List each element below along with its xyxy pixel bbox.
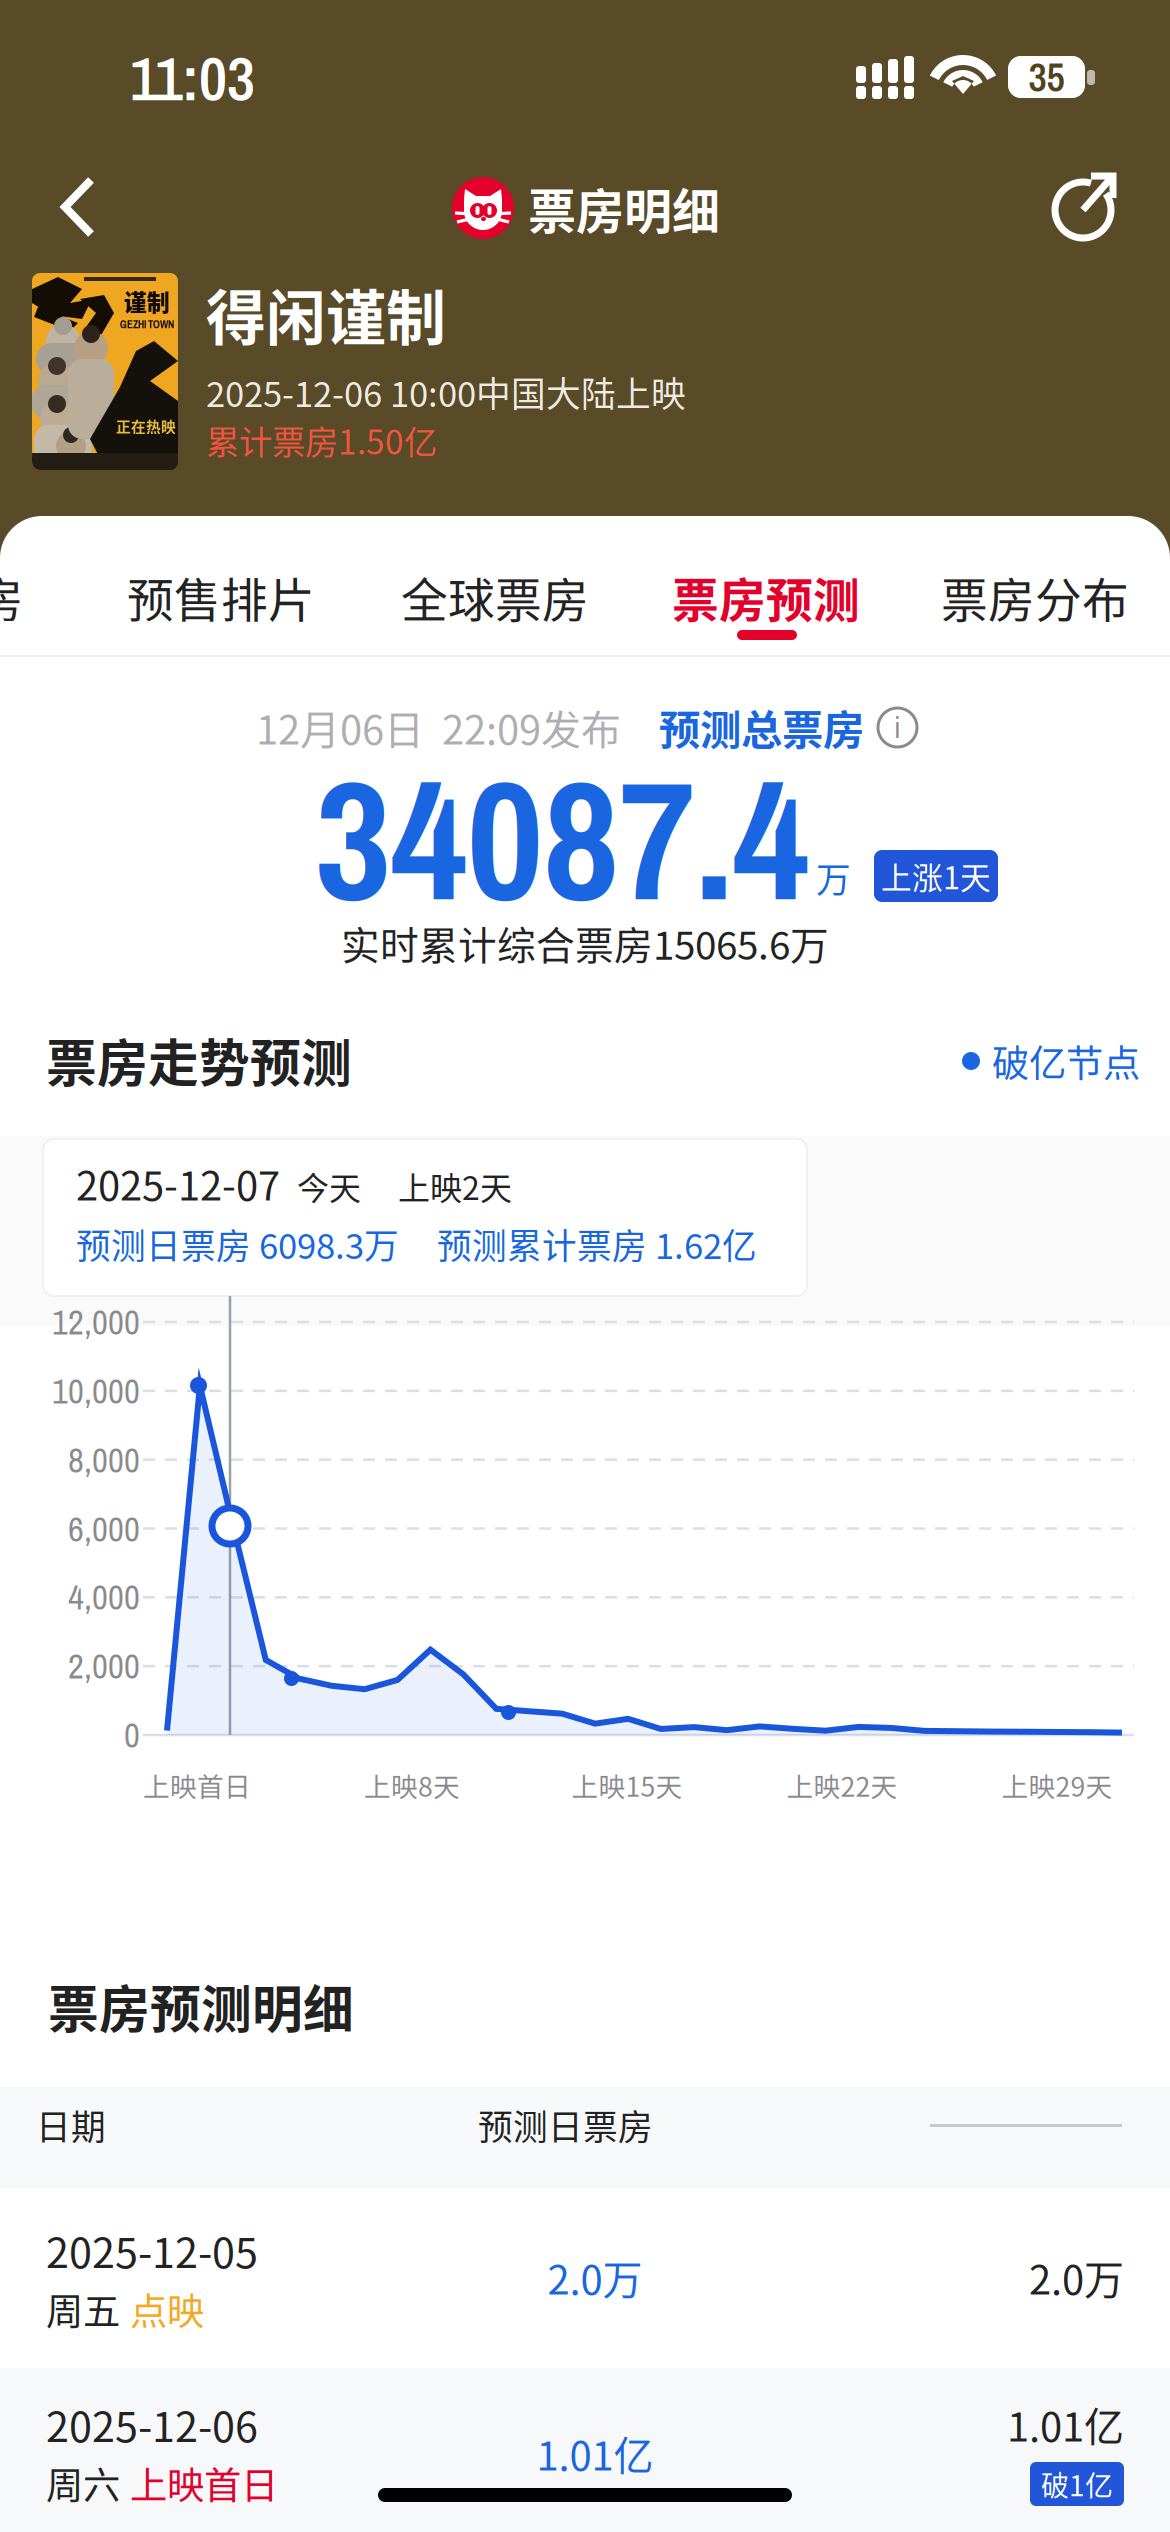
staticText: 万 — [816, 853, 851, 903]
staticText: 1.01亿 — [536, 2424, 653, 2482]
staticText: 破1亿 — [1041, 2464, 1113, 2504]
staticText: 实时累计综合票房15065.6万 — [341, 915, 829, 971]
staticText: 预售排片 — [127, 563, 315, 631]
staticText: 2.0万 — [1029, 2248, 1124, 2306]
button[interactable]: 房 — [0, 545, 90, 650]
staticText: 票房预测 — [672, 563, 860, 631]
staticText: 上映2天 — [398, 1163, 512, 1209]
staticText: 8,000 — [68, 1437, 140, 1483]
staticText: 2,000 — [68, 1643, 140, 1689]
staticText: 上映首日 — [130, 2456, 278, 2510]
staticText: 票房预测明细 — [48, 1969, 354, 2043]
staticText: 35 — [1028, 50, 1064, 104]
staticText: 6,000 — [68, 1506, 140, 1552]
staticText: 票房走势预测 — [46, 1023, 352, 1097]
staticText: 累计票房1.50亿 — [206, 416, 437, 464]
staticText: 今天 — [297, 1163, 361, 1209]
staticText: 2025-12-06 — [46, 2394, 258, 2454]
staticText: 4,000 — [68, 1574, 140, 1620]
staticText: 正在热映 — [116, 415, 176, 437]
staticText: 上映8天 — [364, 1766, 460, 1804]
staticText: 日期 — [36, 2100, 106, 2150]
staticText: 全球票房 — [401, 563, 589, 631]
staticText: 12,000 — [52, 1299, 140, 1345]
staticText: 12月06日 22:09发布 — [256, 698, 621, 756]
button[interactable]: 全球票房 — [404, 545, 586, 650]
button[interactable]: 票房分布 — [944, 545, 1126, 650]
staticText: 预测日票房 6098.3万 — [76, 1219, 399, 1269]
staticText: 11:03 — [130, 37, 255, 119]
staticText: 2025-12-06 10:00中国大陆上映 — [206, 367, 686, 417]
staticText: 2025-12-05 — [46, 2220, 258, 2280]
staticText: 周六 — [46, 2456, 120, 2510]
staticText: 破亿节点 — [992, 1034, 1140, 1088]
staticText: 预测总票房 — [659, 697, 864, 757]
staticText: 0 — [124, 1712, 140, 1758]
staticText: 34087.4 — [315, 727, 809, 951]
button[interactable]: 预测总票房 — [620, 700, 920, 758]
button[interactable]: Share — [1025, 145, 1145, 265]
staticText: 上映22天 — [786, 1766, 897, 1804]
staticText: 票房分布 — [941, 563, 1129, 631]
staticText: 票房明细 — [528, 173, 720, 243]
staticText: 上涨1天 — [881, 854, 991, 898]
button[interactable]: 票房预测 — [675, 545, 857, 650]
staticText: 房 — [0, 563, 23, 631]
staticText: 谨制 — [124, 285, 170, 317]
staticText: 上映29天 — [1001, 1766, 1112, 1804]
staticText: 预测日票房 — [478, 2100, 653, 2150]
staticText: GEZHI TOWN — [120, 317, 174, 332]
staticText: 上映15天 — [571, 1766, 682, 1804]
button[interactable]: 预售排片 — [130, 545, 312, 650]
staticText: 点映 — [130, 2282, 204, 2336]
staticText: 2025-12-07 — [76, 1154, 280, 1212]
staticText: 2.0万 — [547, 2248, 642, 2306]
staticText: i — [894, 708, 901, 747]
staticText: 10,000 — [52, 1368, 140, 1414]
staticText: 得闲谨制 — [206, 271, 446, 357]
button[interactable]: Back — [18, 147, 138, 267]
staticText: 周五 — [46, 2282, 120, 2336]
staticText: 预测累计票房 1.62亿 — [437, 1219, 757, 1269]
staticText: 1.01亿 — [1007, 2395, 1124, 2453]
staticText: 上映首日 — [143, 1766, 251, 1804]
